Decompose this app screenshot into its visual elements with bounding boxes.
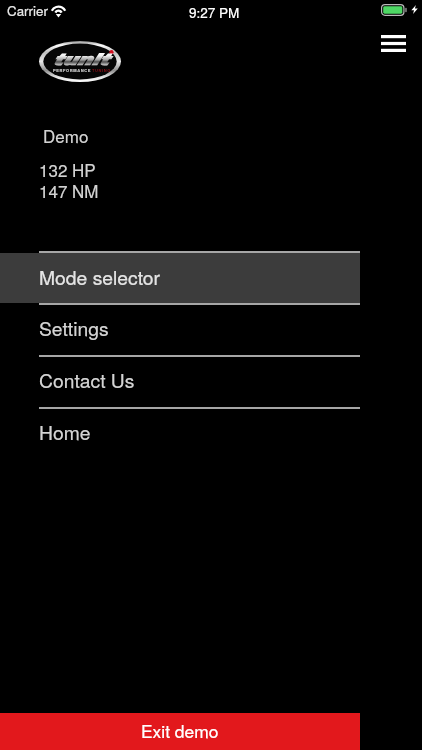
button[interactable]: Home xyxy=(0,409,422,459)
staticText: TUNING xyxy=(92,67,112,73)
staticText: Contact Us xyxy=(39,366,135,394)
staticText: 132 HP xyxy=(39,157,96,181)
staticText: Settings xyxy=(39,314,109,342)
staticText: PERFORMANCE xyxy=(53,67,92,73)
staticText: Exit demo xyxy=(141,718,219,743)
staticText: Carrier xyxy=(7,1,48,20)
staticText: 9:27 PM xyxy=(189,3,240,22)
button[interactable]: Exit demo xyxy=(0,713,360,750)
button[interactable]: Mode selector xyxy=(0,253,360,303)
staticText: 147 NM xyxy=(39,178,99,202)
staticText: tunit xyxy=(52,52,109,69)
staticText: Demo xyxy=(43,123,89,147)
staticText: Mode selector xyxy=(39,263,160,291)
button[interactable]: Settings xyxy=(0,305,422,355)
button[interactable]: Menu xyxy=(373,28,413,58)
button[interactable]: Contact Us xyxy=(0,357,422,407)
staticText: Home xyxy=(39,418,91,446)
